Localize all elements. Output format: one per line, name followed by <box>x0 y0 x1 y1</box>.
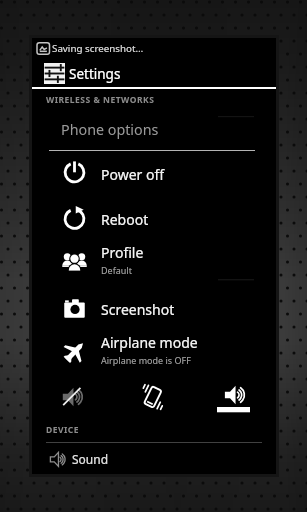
staticText: Sound <box>72 451 109 467</box>
button[interactable]: Screenshot <box>49 285 276 330</box>
staticText: WIRELESS & NETWORKS <box>46 94 155 106</box>
staticText: Profile <box>101 243 144 262</box>
button[interactable]: Reboot <box>49 195 276 240</box>
button[interactable]: Airplane mode <box>49 330 276 375</box>
staticText: Power off <box>101 165 165 184</box>
staticText: Settings <box>69 65 121 83</box>
staticText: Screenshot <box>101 300 175 319</box>
staticText: Phone options <box>61 120 159 139</box>
button[interactable]: Sound mode, selected <box>202 375 265 419</box>
staticText: DEVICE <box>46 424 80 436</box>
button[interactable]: Sound <box>32 444 276 474</box>
staticText: Default <box>101 264 132 276</box>
button[interactable]: Vibrate mode <box>121 375 184 419</box>
staticText: Saving screenshot… <box>52 42 144 55</box>
button[interactable]: Silent mode <box>40 375 103 419</box>
staticText: Airplane mode is OFF <box>101 354 191 366</box>
button[interactable]: Profile <box>49 240 276 285</box>
button[interactable]: Power off <box>49 150 276 195</box>
button[interactable]: Settings <box>32 59 276 88</box>
staticText: Airplane mode <box>101 333 198 352</box>
staticText: Reboot <box>101 210 149 229</box>
